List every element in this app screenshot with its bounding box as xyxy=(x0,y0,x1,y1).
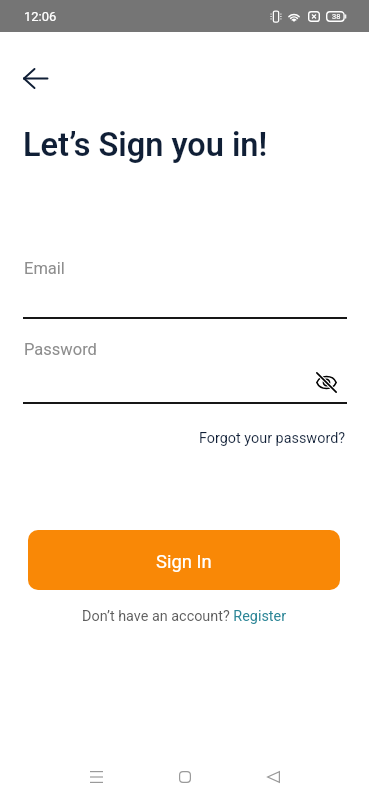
button[interactable]: Back xyxy=(15,58,55,98)
staticText: Forgot your password? xyxy=(199,430,346,447)
button[interactable]: Recent apps xyxy=(74,755,118,799)
staticText: Sign In xyxy=(156,551,212,573)
staticText: Let’s Sign you in! xyxy=(23,126,268,164)
staticText: 38 xyxy=(332,12,341,21)
button[interactable]: Back xyxy=(251,755,295,799)
button[interactable]: Show password xyxy=(311,367,341,397)
button[interactable]: Home xyxy=(163,755,207,799)
button[interactable]: Don’t have an account? Register xyxy=(82,608,287,625)
staticText: Don’t have an account? Register xyxy=(82,608,287,625)
staticText: 12:06 xyxy=(24,9,57,24)
button[interactable]: Password xyxy=(23,336,347,404)
button[interactable]: Email xyxy=(23,255,347,319)
button[interactable]: Sign In xyxy=(28,530,340,590)
staticText: Email xyxy=(24,259,65,278)
staticText: Password xyxy=(24,340,97,359)
button[interactable]: Forgot your password? xyxy=(199,430,346,447)
